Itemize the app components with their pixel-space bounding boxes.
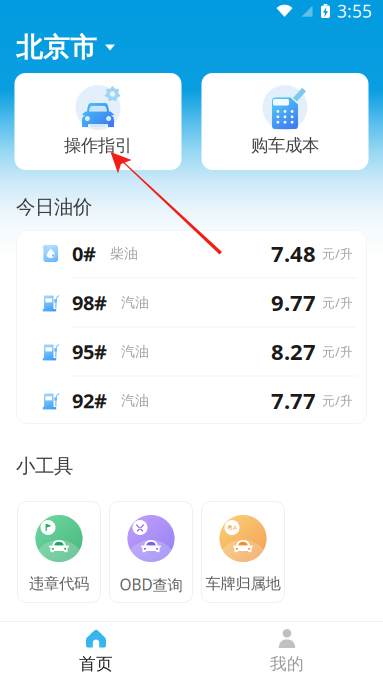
button[interactable]: 违章代码 [17, 501, 101, 603]
button[interactable]: 92# [16, 376, 367, 424]
staticText: 首页 [79, 653, 113, 674]
staticText: 汽油 [121, 392, 149, 409]
staticText: OBD查询 [119, 574, 182, 595]
staticText: 今日油价 [16, 195, 92, 219]
staticText: 98# [72, 289, 107, 316]
staticText: 7.77 [271, 385, 316, 415]
staticText: 小工具 [16, 454, 73, 478]
staticText: 柴油 [110, 245, 138, 262]
button[interactable]: 95# [16, 327, 367, 376]
button[interactable]: 北京市 [0, 22, 127, 73]
staticText: 违章代码 [29, 574, 89, 593]
button[interactable]: 我的 [191, 622, 382, 680]
staticText: 购车成本 [251, 135, 319, 156]
button[interactable]: OBD查询 [109, 501, 193, 603]
staticText: 粤A [227, 523, 237, 532]
staticText: 北京市 [16, 31, 97, 64]
button[interactable]: 首页 [0, 622, 191, 680]
staticText: 9.77 [271, 287, 316, 317]
staticText: 3:55 [337, 0, 372, 23]
staticText: 车牌归属地 [205, 574, 280, 593]
button[interactable]: 购车成本 [201, 73, 368, 170]
staticText: 操作指引 [64, 135, 132, 156]
staticText: 元/升 [322, 245, 353, 262]
staticText: 7.48 [271, 238, 316, 268]
staticText: 我的 [270, 653, 304, 674]
button[interactable]: 粤A [201, 501, 285, 603]
staticText: 元/升 [322, 343, 353, 360]
staticText: 元/升 [322, 392, 353, 409]
staticText: 8.27 [271, 336, 316, 366]
staticText: 95# [72, 338, 107, 365]
staticText: 元/升 [322, 294, 353, 311]
staticText: 汽油 [121, 343, 149, 360]
button[interactable]: 0# [16, 229, 367, 278]
button[interactable]: 操作指引 [14, 73, 181, 170]
staticText: 汽油 [121, 294, 149, 311]
staticText: 0# [72, 240, 96, 267]
staticText: 92# [72, 387, 107, 414]
button[interactable]: 98# [16, 278, 367, 327]
